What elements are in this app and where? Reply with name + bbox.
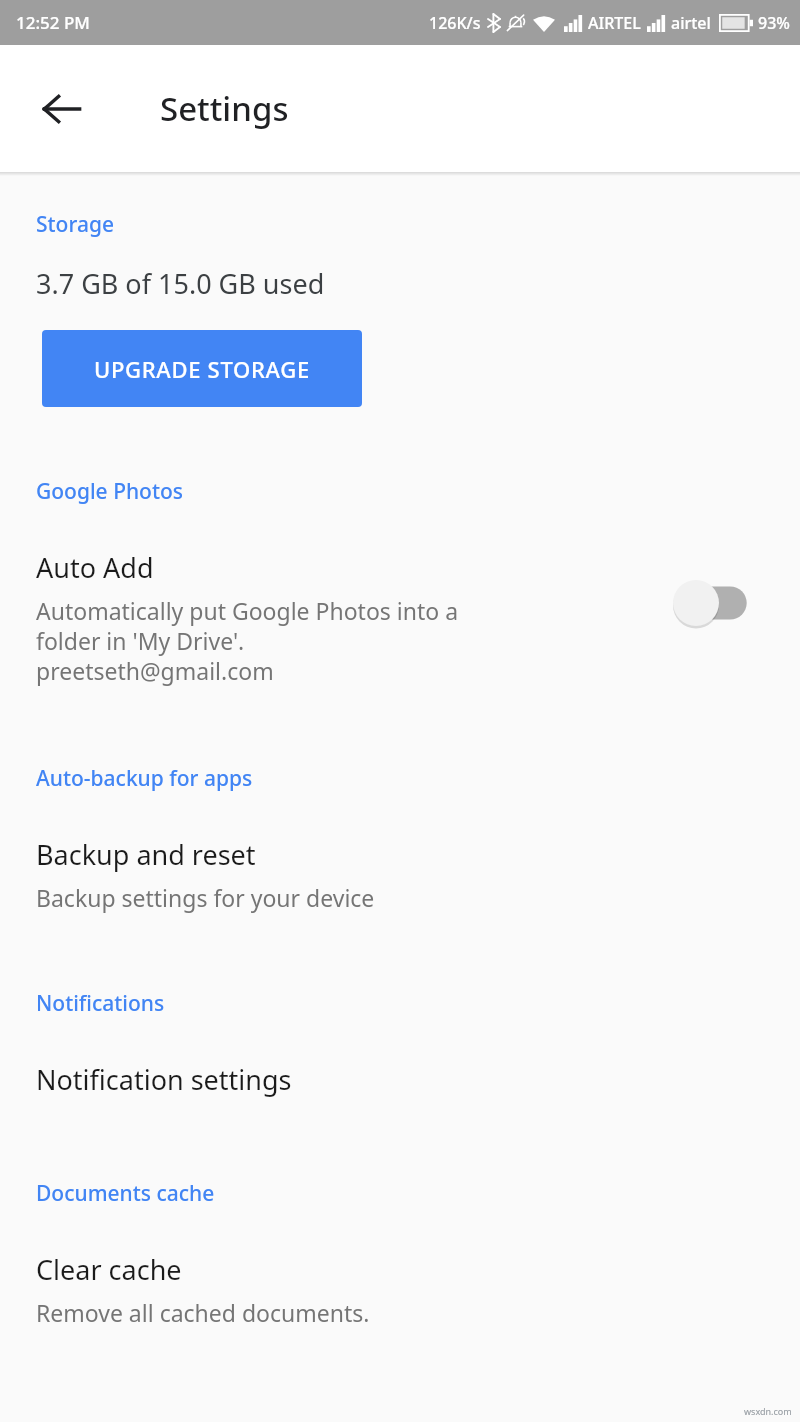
button[interactable]: UPGRADE STORAGE [42, 330, 362, 407]
staticText: 126K/s [429, 12, 481, 34]
staticText: Auto Add [36, 549, 154, 586]
button[interactable]: Auto Add [0, 549, 800, 686]
staticText: UPGRADE STORAGE [94, 354, 310, 384]
staticText: 12:52 PM [16, 11, 90, 34]
staticText: Backup and reset [36, 836, 256, 873]
staticText: 93% [758, 12, 790, 34]
staticText: Clear cache [36, 1251, 182, 1288]
button[interactable]: Auto Add toggle [672, 575, 764, 631]
staticText: 3.7 GB of 15.0 GB used [36, 265, 325, 302]
staticText: Settings [160, 86, 289, 131]
staticText: Google Photos [36, 477, 184, 506]
staticText: Auto-backup for apps [36, 764, 253, 793]
button[interactable]: Backup and reset [0, 836, 800, 913]
staticText: wsxdn.com [744, 1405, 792, 1417]
staticText: AIRTEL [588, 12, 641, 34]
staticText: airtel [671, 12, 711, 34]
button[interactable]: Back [26, 73, 98, 145]
button[interactable]: Notification settings [0, 1061, 800, 1098]
staticText: Notification settings [36, 1061, 292, 1098]
staticText: Backup settings for your device [36, 882, 375, 913]
button[interactable]: Clear cache [0, 1251, 800, 1328]
staticText: Notifications [36, 989, 165, 1018]
staticText: Storage [36, 210, 114, 239]
staticText: Automatically put Google Photos into a f… [36, 595, 459, 686]
staticText: Remove all cached documents. [36, 1297, 370, 1328]
staticText: Documents cache [36, 1179, 215, 1208]
